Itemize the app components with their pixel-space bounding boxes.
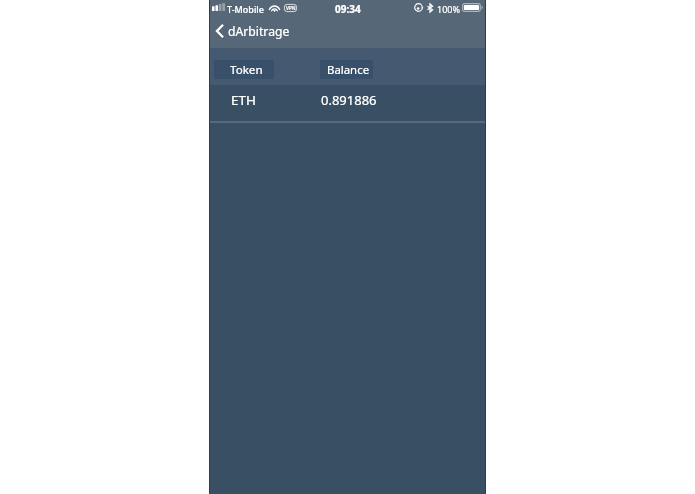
staticText: T-Mobile	[227, 3, 264, 15]
staticText: 0.891886	[321, 91, 377, 109]
staticText: Balance	[327, 62, 370, 78]
staticText: VPN	[286, 5, 296, 11]
staticText: dArbitrage	[228, 23, 290, 40]
other: Back	[216, 24, 224, 38]
button[interactable]: Back	[213, 16, 296, 46]
button[interactable]: Balance	[320, 60, 373, 79]
staticText: ETH	[231, 91, 256, 109]
staticText: 100%	[437, 3, 460, 15]
button[interactable]: Token	[214, 60, 274, 79]
staticText: Token	[230, 62, 263, 78]
staticText: 09:34	[335, 2, 361, 16]
button[interactable]: ETH	[209, 85, 486, 121]
